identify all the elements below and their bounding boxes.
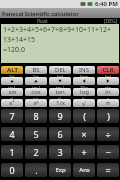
staticText: ) [107,110,110,122]
staticText: ³√ [82,96,86,99]
button[interactable]: + [73,145,95,159]
staticText: . [35,164,38,176]
staticText: 6 [57,128,63,140]
staticText: e^x [105,85,111,88]
button[interactable]: 3 [49,145,71,159]
button[interactable]: left [73,77,95,85]
staticText: log [80,88,89,96]
button[interactable]: 2 [25,145,47,159]
staticText: 2 [33,146,39,158]
button[interactable]: 4 [1,127,23,141]
button[interactable]: ( [73,109,95,123]
staticText: tan [55,88,65,96]
staticText: x² [9,99,15,107]
staticText: 8 [33,110,39,122]
staticText: = [105,164,111,176]
staticText: ÷ [105,128,111,140]
button[interactable]: Exp [49,163,71,177]
button[interactable]: √ [73,99,95,107]
staticText: × [81,128,87,140]
button[interactable]: Ans [73,163,95,177]
button[interactable]: log [73,88,95,96]
staticText: Del [9,74,15,77]
staticText: ʸ√x [33,96,39,99]
staticText: 6:40 PM [95,0,118,8]
staticText: cos [31,88,41,96]
button[interactable]: right [97,77,119,85]
staticText: 9 [57,110,63,122]
staticText: 13+14+15 [3,35,36,45]
button[interactable]: ALT [1,66,23,74]
button[interactable]: cos [25,88,47,96]
staticText: End [105,74,112,77]
button[interactable]: ln [97,88,119,96]
staticText: tan-1 [56,85,65,88]
staticText: float [37,18,48,24]
button[interactable]: 1 [1,145,23,159]
button[interactable]: up [25,77,47,85]
staticText: π [106,99,110,107]
button[interactable]: 1/x [49,99,71,107]
staticText: − [105,146,111,158]
staticText: 10^x [80,85,88,88]
button[interactable]: CLR [97,66,119,74]
staticText: INS [79,66,89,74]
staticText: Hom [80,74,88,77]
button[interactable]: sin [1,88,23,96]
button[interactable]: − [97,145,119,159]
button[interactable]: ) [97,109,119,123]
staticText: cos-1 [32,85,41,88]
staticText: BS [32,66,40,74]
button[interactable]: up [1,77,23,85]
staticText: 3 [57,146,63,158]
button[interactable]: ÷ [97,127,119,141]
staticText: Panecal Scientific calculator [2,10,79,17]
button[interactable]: 5 [25,127,47,141]
button[interactable]: 0 [1,163,23,177]
button[interactable]: × [73,127,95,141]
button[interactable]: INS [73,66,95,74]
staticText: End [57,74,64,77]
staticText: Ans [79,166,90,174]
staticText: 1+2+3+4+5+6+7+8+9+10+11+12+ [3,25,112,35]
button[interactable]: . [25,163,47,177]
button[interactable]: 6 [49,127,71,141]
button[interactable]: 9 [49,109,71,123]
staticText: CLR [102,66,114,74]
staticText: ln [105,88,111,96]
staticText: [DEG] [104,18,118,24]
button[interactable]: π [97,99,119,107]
staticText: + [81,146,87,158]
staticText: x³ [10,96,14,99]
staticText: 4 [9,128,15,140]
staticText: 1 [9,146,15,158]
staticText: =120.0 [3,45,25,55]
staticText: Exp [55,166,66,174]
button[interactable]: 8 [25,109,47,123]
staticText: xʸ [33,99,39,107]
button[interactable]: x² [1,99,23,107]
staticText: √ [82,100,86,107]
button[interactable]: 7 [1,109,23,123]
staticText: DEL [55,66,66,74]
button[interactable]: down [49,77,71,85]
button[interactable]: DEL [49,66,71,74]
staticText: Top [33,74,39,77]
staticText: 7 [9,110,15,122]
staticText: 1/x [56,99,65,107]
staticText: ( [83,110,86,122]
button[interactable]: = [97,163,119,177]
staticText: ALT [7,66,18,74]
staticText: sin-1 [8,85,16,88]
staticText: n! [58,96,62,99]
staticText: 0 [9,164,15,176]
staticText: 5 [33,128,39,140]
staticText: e [107,96,109,99]
staticText: sin [8,88,17,96]
button[interactable]: xʸ [25,99,47,107]
button[interactable]: tan [49,88,71,96]
button[interactable]: BS [25,66,47,74]
